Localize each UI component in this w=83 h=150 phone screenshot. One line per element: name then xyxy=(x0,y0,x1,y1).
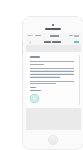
button[interactable]: Signature seal xyxy=(26,52,81,108)
button[interactable]: Save xyxy=(73,39,79,45)
button[interactable]: Signature seal xyxy=(30,94,39,103)
button[interactable]: Home xyxy=(48,135,58,145)
button[interactable]: Back xyxy=(28,39,33,45)
